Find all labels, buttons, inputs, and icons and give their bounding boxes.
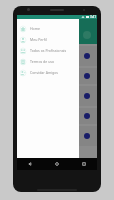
- button[interactable]: Meu Perfil: [17, 34, 79, 45]
- button[interactable]: Todos os Profissionais: [17, 45, 79, 56]
- button[interactable]: Recent apps: [70, 158, 97, 170]
- staticText: 3:41: [90, 15, 96, 19]
- button[interactable]: Home: [17, 23, 79, 34]
- button[interactable]: [17, 46, 97, 66]
- button[interactable]: Back: [17, 158, 43, 170]
- button[interactable]: Home: [43, 158, 70, 170]
- button[interactable]: [17, 108, 97, 124]
- staticText: Meu Perfil: [30, 37, 47, 42]
- button[interactable]: [17, 126, 97, 146]
- staticText: Convidar Amigos: [30, 70, 59, 75]
- button[interactable]: [17, 86, 97, 106]
- button[interactable]: Termos de uso: [17, 56, 79, 67]
- staticText: Todos os Profissionais: [30, 48, 67, 53]
- button[interactable]: [17, 68, 97, 84]
- button[interactable]: Convidar Amigos: [17, 67, 79, 78]
- staticText: Home: [30, 26, 40, 31]
- staticText: Termos de uso: [30, 59, 55, 64]
